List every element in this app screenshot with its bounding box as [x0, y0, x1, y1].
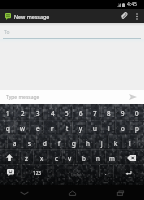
button[interactable]: Home: [48, 185, 96, 200]
button[interactable]: u: [88, 120, 102, 135]
staticText: i: [108, 124, 110, 132]
button[interactable]: e: [30, 120, 45, 135]
button[interactable]: w: [15, 120, 30, 135]
staticText: To: [4, 29, 10, 36]
button[interactable]: Back: [0, 185, 48, 200]
button[interactable]: j: [95, 135, 109, 150]
button[interactable]: 7: [88, 105, 102, 120]
button[interactable]: s: [22, 135, 37, 150]
staticText: u: [93, 124, 97, 132]
staticText: k: [114, 139, 118, 147]
button[interactable]: Backspace: [119, 150, 144, 165]
staticText: c: [55, 154, 58, 162]
staticText: h: [86, 139, 90, 147]
button[interactable]: g: [67, 135, 81, 150]
button[interactable]: y: [74, 120, 88, 135]
button[interactable]: More options: [132, 9, 142, 23]
staticText: n: [96, 154, 100, 162]
staticText: 4: [51, 109, 55, 117]
button[interactable]: c: [49, 150, 63, 165]
button[interactable]: 5: [60, 105, 74, 120]
staticText: 0: [135, 109, 139, 117]
button[interactable]: 8: [102, 105, 116, 120]
button[interactable]: Space: [53, 165, 99, 180]
button[interactable]: f: [52, 135, 67, 150]
staticText: 5: [65, 109, 69, 117]
button[interactable]: a: [7, 135, 22, 150]
button[interactable]: Send: [125, 90, 141, 104]
staticText: 6: [79, 109, 83, 117]
staticText: 123: [33, 170, 41, 176]
staticText: d: [43, 139, 47, 147]
button[interactable]: Recents: [96, 185, 144, 200]
button[interactable]: 1: [0, 105, 15, 120]
button[interactable]: h: [81, 135, 95, 150]
staticText: j: [101, 139, 103, 147]
staticText: 7: [93, 109, 97, 117]
staticText: 8: [107, 109, 111, 117]
button[interactable]: z: [19, 150, 34, 165]
button[interactable]: Attach: [116, 9, 132, 23]
staticText: 3: [36, 109, 40, 117]
staticText: b: [82, 154, 86, 162]
button[interactable]: Shift: [0, 150, 19, 165]
button[interactable]: l: [123, 135, 137, 150]
button[interactable]: t: [60, 120, 74, 135]
staticText: New message: [14, 13, 50, 20]
button[interactable]: 4: [45, 105, 60, 120]
button[interactable]: m: [105, 150, 119, 165]
staticText: r: [51, 124, 54, 132]
button[interactable]: 123: [21, 165, 53, 180]
staticText: 1: [6, 109, 10, 117]
staticText: w: [20, 124, 25, 132]
staticText: z: [25, 154, 28, 162]
button[interactable]: 0: [130, 105, 144, 120]
staticText: s: [28, 139, 31, 147]
button[interactable]: .: [99, 165, 113, 180]
button[interactable]: b: [77, 150, 91, 165]
staticText: l: [129, 139, 131, 147]
button[interactable]: d: [37, 135, 52, 150]
staticText: 2: [21, 109, 25, 117]
staticText: Type message: [6, 94, 40, 101]
button[interactable]: p: [130, 120, 144, 135]
staticText: y: [79, 124, 83, 132]
button[interactable]: n: [91, 150, 105, 165]
button[interactable]: q: [0, 120, 15, 135]
staticText: English: [71, 173, 82, 177]
button[interactable]: x: [34, 150, 49, 165]
button[interactable]: Emoji: [0, 165, 21, 180]
staticText: x: [40, 154, 44, 162]
button[interactable]: 9: [116, 105, 130, 120]
staticText: q: [6, 124, 10, 132]
button[interactable]: 2: [15, 105, 30, 120]
button[interactable]: k: [109, 135, 123, 150]
staticText: 4:45: [127, 1, 137, 8]
staticText: o: [121, 124, 125, 132]
staticText: g: [72, 139, 76, 147]
staticText: 9: [121, 109, 125, 117]
staticText: f: [58, 139, 61, 147]
staticText: p: [135, 124, 139, 132]
button[interactable]: Enter: [113, 165, 144, 180]
button[interactable]: 3: [30, 105, 45, 120]
staticText: .: [105, 169, 107, 176]
button[interactable]: o: [116, 120, 130, 135]
button[interactable]: v: [63, 150, 77, 165]
staticText: m: [109, 154, 115, 162]
staticText: v: [68, 154, 72, 162]
staticText: a: [13, 139, 17, 147]
staticText: t: [66, 124, 69, 132]
staticText: e: [36, 124, 40, 132]
button[interactable]: 6: [74, 105, 88, 120]
button[interactable]: r: [45, 120, 60, 135]
button[interactable]: i: [102, 120, 116, 135]
